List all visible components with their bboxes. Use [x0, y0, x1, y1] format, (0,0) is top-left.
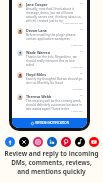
staticText: Yesterday	[72, 88, 83, 91]
staticText: The meeting will be this coming week, sh…	[26, 99, 83, 111]
button[interactable]: Theresa Webb	[12, 92, 87, 114]
button[interactable]: Pinterest	[61, 137, 71, 147]
staticText: Floyd Miles	[26, 72, 80, 77]
button[interactable]: YouTube	[89, 137, 99, 147]
button[interactable]: REFRESH NOTIFICATION	[12, 118, 87, 128]
button[interactable]: Floyd Miles	[12, 70, 87, 92]
staticText: Exactly my thoughts! But we should go do…	[26, 77, 83, 85]
staticText: Actually, now that I think about it, mes…	[26, 7, 83, 23]
staticText: 3 days ago	[71, 66, 83, 69]
staticText: Jane Cooper	[26, 2, 80, 7]
staticText: 3d	[80, 28, 83, 31]
staticText: Review and reply to incoming DMs, commen…	[1, 149, 102, 176]
button[interactable]: Facebook	[5, 137, 15, 147]
staticText: Devon Lane	[26, 28, 80, 33]
button[interactable]: LinkedIn	[47, 137, 57, 147]
staticText: REFRESH NOTIFICATION	[35, 121, 69, 125]
staticText: 3 days ago	[71, 44, 83, 47]
staticText: a few minutes ago	[63, 22, 83, 25]
staticText: Theresa Webb	[26, 94, 80, 99]
staticText: 3d	[80, 72, 83, 75]
staticText: 3d	[80, 50, 83, 53]
button[interactable]: Devon Lane	[12, 26, 87, 48]
staticText: 3 days ago	[71, 110, 83, 113]
button[interactable]: Instagram	[33, 137, 43, 147]
staticText: Wade Warren	[26, 50, 80, 55]
staticText: Thanks for the info. Regardless, we shou…	[26, 55, 83, 67]
button[interactable]: TikTok	[75, 137, 85, 147]
staticText: 3d	[80, 94, 83, 97]
button[interactable]: X	[19, 137, 29, 147]
staticText: Before installing the plugin please cont…	[26, 33, 83, 41]
button[interactable]: Jane Cooper	[12, 0, 87, 26]
button[interactable]: Wade Warren	[12, 48, 87, 70]
staticText: 3d	[80, 2, 83, 5]
